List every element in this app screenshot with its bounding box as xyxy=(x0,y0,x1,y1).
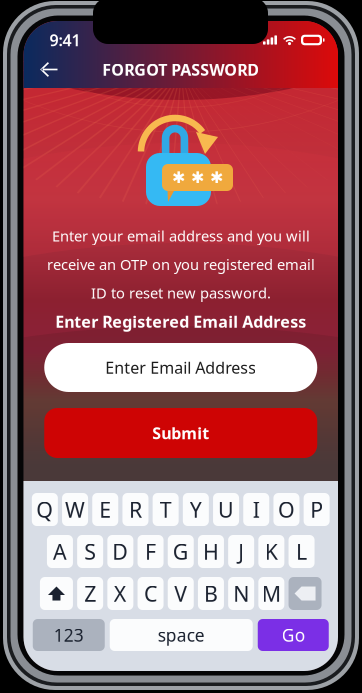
button[interactable]: N xyxy=(228,577,254,610)
staticText: U xyxy=(218,495,234,524)
button[interactable]: J xyxy=(228,535,254,568)
staticText: H xyxy=(203,537,219,566)
button[interactable]: G xyxy=(168,535,194,568)
button[interactable]: Back xyxy=(30,51,66,87)
staticText: I xyxy=(253,495,260,524)
staticText: S xyxy=(84,537,96,566)
button[interactable]: K xyxy=(258,535,284,568)
staticText: X xyxy=(114,579,127,608)
button[interactable]: L xyxy=(288,535,314,568)
button[interactable]: D xyxy=(107,535,133,568)
button[interactable]: W xyxy=(62,493,88,526)
button[interactable]: T xyxy=(153,493,179,526)
staticText: C xyxy=(144,579,157,608)
staticText: FORGOT PASSWORD xyxy=(102,59,259,80)
button[interactable]: U xyxy=(213,493,239,526)
staticText: Submit xyxy=(152,422,209,444)
staticText: A xyxy=(53,537,67,566)
button[interactable]: space xyxy=(110,619,253,651)
button[interactable]: 123 xyxy=(33,619,105,651)
button[interactable]: M xyxy=(258,577,284,610)
button[interactable]: Submit xyxy=(44,408,317,458)
staticText: Z xyxy=(84,579,96,608)
staticText: M xyxy=(262,579,281,608)
staticText: T xyxy=(160,495,172,524)
staticText: Q xyxy=(36,495,53,524)
staticText: F xyxy=(145,537,156,566)
button[interactable]: X xyxy=(107,577,133,610)
staticText: N xyxy=(233,579,249,608)
staticText: B xyxy=(204,579,218,608)
staticText: Enter Registered Email Address xyxy=(55,311,306,332)
button[interactable]: Y xyxy=(183,493,209,526)
staticText: Y xyxy=(190,495,202,524)
staticText: 123 xyxy=(54,623,84,646)
button[interactable]: F xyxy=(137,535,163,568)
button[interactable]: Q xyxy=(32,493,58,526)
button[interactable]: E xyxy=(92,493,118,526)
staticText: Enter Email Address xyxy=(105,357,256,378)
staticText: L xyxy=(296,537,307,566)
button[interactable]: Shift xyxy=(40,577,73,610)
button[interactable]: Go xyxy=(258,619,329,651)
button[interactable]: H xyxy=(198,535,224,568)
staticText: 9:41 xyxy=(49,29,80,51)
button[interactable]: Z xyxy=(77,577,103,610)
staticText: W xyxy=(65,495,85,524)
staticText: Go xyxy=(282,623,305,646)
button[interactable]: P xyxy=(304,493,330,526)
staticText: K xyxy=(265,537,278,566)
staticText: O xyxy=(278,495,295,524)
staticText: space xyxy=(158,623,205,646)
staticText: R xyxy=(129,495,142,524)
button[interactable]: S xyxy=(77,535,103,568)
button[interactable]: Delete xyxy=(288,577,321,610)
button[interactable]: I xyxy=(243,493,269,526)
staticText: J xyxy=(238,537,244,566)
staticText: ✱ ✱ ✱ xyxy=(172,168,223,187)
staticText: G xyxy=(173,537,189,566)
button[interactable]: R xyxy=(122,493,148,526)
button[interactable]: Enter Email Address xyxy=(44,343,317,392)
button[interactable]: O xyxy=(273,493,299,526)
staticText: E xyxy=(99,495,111,524)
staticText: V xyxy=(174,579,187,608)
staticText: Enter your email address and you will re… xyxy=(47,226,315,302)
staticText: P xyxy=(310,495,323,524)
staticText: D xyxy=(112,537,128,566)
button[interactable]: C xyxy=(138,577,164,610)
button[interactable]: A xyxy=(47,535,73,568)
button[interactable]: V xyxy=(168,577,194,610)
button[interactable]: B xyxy=(198,577,224,610)
